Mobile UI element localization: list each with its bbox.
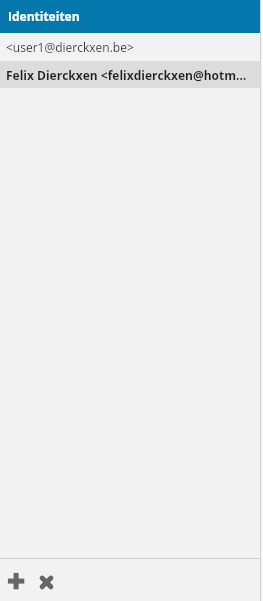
staticText: <user1@dierckxen.be> [6,39,134,55]
button[interactable]: Felix Dierckxen <felixdierckxen@hotm… [0,61,260,88]
button[interactable]: <user1@dierckxen.be> [0,33,260,61]
button[interactable]: Add identity [1,565,31,595]
staticText: Identiteiten [8,8,80,24]
staticText: Felix Dierckxen <felixdierckxen@hotm… [6,67,247,83]
button[interactable]: Identiteiten [0,0,260,33]
button[interactable]: Remove identity [31,565,61,595]
